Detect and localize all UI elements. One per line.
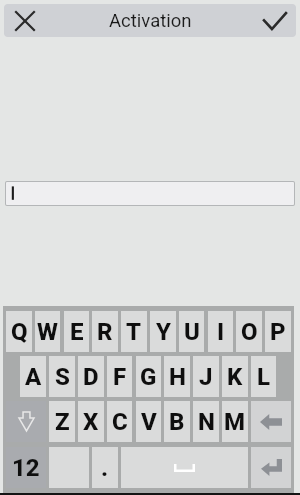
button[interactable]: 12 <box>6 447 46 488</box>
staticText: N <box>198 408 215 436</box>
staticText: M <box>224 408 246 436</box>
staticText: S <box>55 363 70 391</box>
button[interactable]: G <box>136 356 161 397</box>
button[interactable]: Shift <box>6 401 46 442</box>
button[interactable]: Confirm <box>254 4 296 37</box>
button[interactable]: I <box>208 311 233 352</box>
button[interactable]: P <box>265 311 291 352</box>
staticText: I <box>217 318 225 346</box>
staticText: T <box>126 318 142 346</box>
staticText: P <box>270 318 286 346</box>
button[interactable]: C <box>107 401 132 442</box>
button[interactable]: H <box>164 356 190 397</box>
button[interactable]: U <box>179 311 204 352</box>
button[interactable]: Y <box>150 311 176 352</box>
staticText: Q <box>11 318 28 346</box>
button[interactable]: Space <box>121 447 248 488</box>
button[interactable]: T <box>121 311 147 352</box>
staticText: L <box>257 363 270 391</box>
button[interactable]: S <box>49 356 75 397</box>
staticText: . <box>101 454 109 482</box>
staticText: Z <box>55 408 70 436</box>
staticText: V <box>141 408 157 436</box>
staticText: Activation <box>109 10 192 32</box>
staticText: U <box>184 318 200 346</box>
button[interactable]: D <box>78 356 104 397</box>
staticText: W <box>37 318 58 346</box>
staticText: D <box>83 363 99 391</box>
staticText: J <box>199 363 213 391</box>
button[interactable]: Backspace <box>251 401 291 442</box>
button[interactable]: V <box>136 401 161 442</box>
button[interactable]: K <box>222 356 248 397</box>
staticText: 12 <box>12 454 40 482</box>
button[interactable]: Q <box>6 311 32 352</box>
staticText: E <box>70 318 84 346</box>
button[interactable]: J <box>193 356 219 397</box>
staticText: B <box>169 408 185 436</box>
staticText: A <box>25 363 42 391</box>
button[interactable]: A <box>20 356 46 397</box>
button[interactable]: R <box>92 311 118 352</box>
button[interactable]: Enter <box>251 447 291 488</box>
button[interactable]: Close <box>4 4 46 37</box>
staticText: X <box>83 408 99 436</box>
button[interactable]: Z <box>49 401 75 442</box>
staticText: R <box>97 318 113 346</box>
staticText: K <box>227 363 243 391</box>
staticText: G <box>140 363 157 391</box>
button[interactable]: F <box>107 356 132 397</box>
button[interactable]: W <box>35 311 60 352</box>
button[interactable]: M <box>222 401 248 442</box>
staticText: O <box>241 318 258 346</box>
staticText: H <box>169 363 186 391</box>
button[interactable]: L <box>251 356 276 397</box>
button[interactable]: E <box>64 311 89 352</box>
button[interactable]: N <box>193 401 219 442</box>
staticText: Y <box>156 318 171 346</box>
staticText: C <box>112 408 128 436</box>
button[interactable]: X <box>78 401 104 442</box>
staticText: F <box>113 363 127 391</box>
button[interactable]: Activation code input <box>5 181 295 206</box>
button[interactable]: O <box>236 311 262 352</box>
button[interactable]: B <box>164 401 190 442</box>
button[interactable]: . <box>92 447 118 488</box>
